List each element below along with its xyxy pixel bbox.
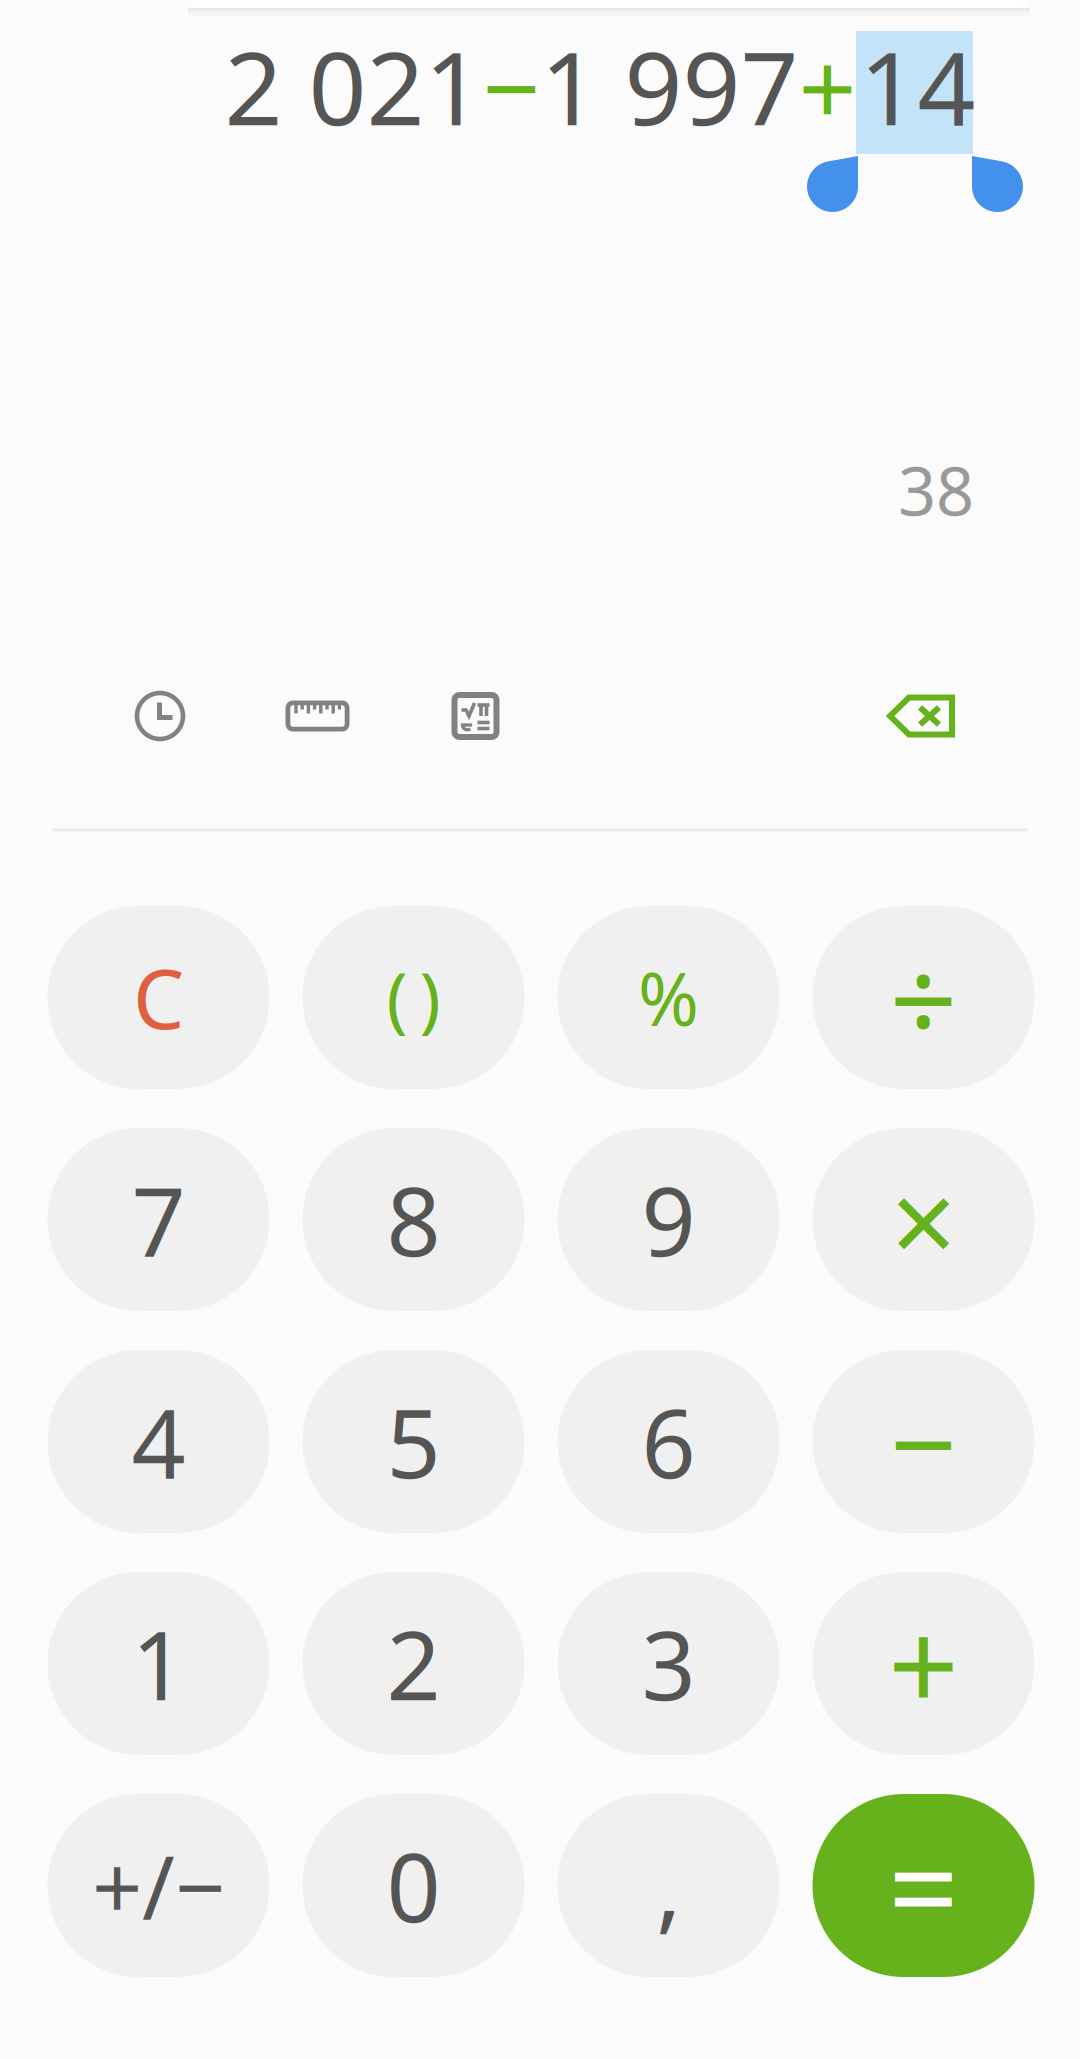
staticText: %	[638, 949, 699, 1046]
button[interactable]: 6	[557, 1350, 779, 1533]
button[interactable]: 0	[302, 1794, 524, 1977]
staticText: 4	[131, 1379, 185, 1504]
staticText: 9	[641, 1157, 695, 1282]
button[interactable]: Backspace	[887, 694, 955, 737]
staticText: 38	[898, 446, 974, 534]
button[interactable]: Unit converter	[285, 700, 349, 731]
button[interactable]: 9	[557, 1128, 779, 1311]
button[interactable]: %	[557, 906, 779, 1089]
button[interactable]: 1	[47, 1572, 269, 1755]
staticText: 1 997	[540, 19, 798, 153]
button[interactable]: 7	[47, 1128, 269, 1311]
staticText: −	[890, 1364, 957, 1519]
button[interactable]: +	[812, 1572, 1034, 1755]
staticText: 6	[641, 1379, 695, 1504]
button[interactable]: 8	[302, 1128, 524, 1311]
button[interactable]: ( )	[302, 906, 524, 1089]
staticText: 3	[641, 1601, 695, 1726]
button[interactable]: Scientific calculator	[451, 692, 499, 740]
staticText: =	[888, 1803, 959, 1968]
staticText: ×	[890, 1142, 956, 1296]
staticText: C	[133, 943, 184, 1051]
staticText: +	[888, 1581, 959, 1746]
button[interactable]: History	[134, 690, 185, 741]
button[interactable]: 2	[302, 1572, 524, 1755]
button[interactable]: ÷	[812, 906, 1034, 1089]
button[interactable]: C	[47, 906, 269, 1089]
staticText: 2	[386, 1601, 440, 1726]
staticText: 14	[859, 19, 975, 153]
staticText: 7	[131, 1157, 185, 1282]
button[interactable]: +/−	[47, 1794, 269, 1977]
staticText: 2 021	[224, 19, 482, 153]
button[interactable]: 4	[47, 1350, 269, 1533]
button[interactable]: ,	[557, 1794, 779, 1977]
staticText: −	[482, 19, 540, 153]
button[interactable]: −	[812, 1350, 1034, 1533]
staticText: 1	[131, 1601, 185, 1726]
staticText: +/−	[92, 1827, 225, 1944]
staticText: ( )	[386, 951, 440, 1044]
staticText: +	[798, 19, 856, 153]
button[interactable]: ×	[812, 1128, 1034, 1311]
staticText: 8	[386, 1157, 440, 1282]
button[interactable]: 5	[302, 1350, 524, 1533]
staticText: ÷	[889, 919, 957, 1076]
staticText: 5	[386, 1379, 440, 1504]
staticText: 0	[386, 1823, 440, 1948]
button[interactable]: 3	[557, 1572, 779, 1755]
button[interactable]: =	[812, 1794, 1034, 1977]
staticText: ,	[656, 1823, 681, 1948]
